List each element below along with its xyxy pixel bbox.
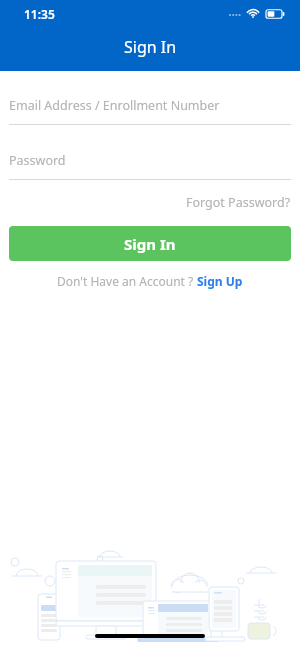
button[interactable]: Email Address / Enrollment Number bbox=[9, 97, 291, 125]
button[interactable]: Sign Up bbox=[197, 273, 243, 289]
button[interactable]: Password bbox=[9, 152, 291, 180]
staticText: 11:35 bbox=[24, 6, 55, 22]
staticText: Sign In bbox=[124, 36, 177, 58]
staticText: Sign In bbox=[124, 234, 176, 254]
staticText: Don't Have an Account ? bbox=[57, 273, 197, 289]
staticText: Password bbox=[9, 152, 66, 169]
staticText: Sign Up bbox=[197, 273, 243, 289]
staticText: Email Address / Enrollment Number bbox=[9, 97, 220, 114]
button[interactable]: Sign In bbox=[9, 226, 291, 261]
staticText: Forgot Password? bbox=[186, 194, 291, 211]
button[interactable]: Forgot Password? bbox=[186, 192, 291, 213]
